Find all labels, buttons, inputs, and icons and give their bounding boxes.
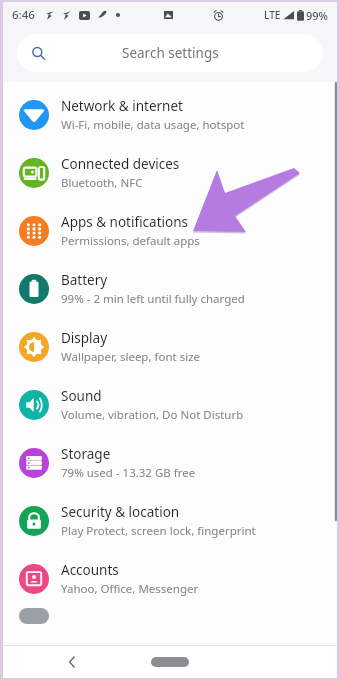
staticText: Security & location — [61, 503, 180, 521]
staticText: Volume, vibration, Do Not Disturb — [61, 407, 244, 423]
staticText: Sound — [61, 387, 102, 405]
staticText: Connected devices — [61, 155, 180, 173]
button[interactable]: Security & location — [3, 492, 337, 550]
button[interactable]: Back — [61, 651, 83, 673]
staticText: Battery — [61, 271, 108, 289]
button[interactable]: Sound — [3, 376, 337, 434]
button[interactable]: Storage — [3, 434, 337, 492]
button[interactable]: Apps & notifications — [3, 202, 337, 260]
staticText: Search settings — [122, 44, 219, 62]
staticText: Accounts — [61, 561, 119, 579]
staticText: Wi-Fi, mobile, data usage, hotspot — [61, 117, 245, 133]
button[interactable]: Home — [151, 657, 189, 667]
button[interactable] — [3, 608, 337, 624]
staticText: Play Protect, screen lock, fingerprint — [61, 523, 256, 539]
staticText: Storage — [61, 445, 111, 463]
staticText: Network & internet — [61, 97, 183, 115]
button[interactable]: Search settings — [17, 34, 323, 72]
staticText: Apps & notifications — [61, 213, 188, 231]
staticText: Display — [61, 329, 108, 347]
button[interactable]: Network & internet — [3, 86, 337, 144]
button[interactable]: Connected devices — [3, 144, 337, 202]
button[interactable]: Display — [3, 318, 337, 376]
staticText: 99% - 2 min left until fully charged — [61, 291, 245, 307]
staticText: 6:46 — [12, 7, 35, 23]
staticText: Bluetooth, NFC — [61, 175, 143, 191]
staticText: 79% used - 13.32 GB free — [61, 465, 196, 481]
staticText: Yahoo, Office, Messenger — [61, 581, 199, 597]
staticText: Wallpaper, sleep, font size — [61, 349, 201, 365]
staticText: LTE — [264, 8, 281, 22]
staticText: Permissions, default apps — [61, 233, 200, 249]
button[interactable]: Battery — [3, 260, 337, 318]
staticText: 99% — [306, 8, 328, 23]
button[interactable]: Accounts — [3, 550, 337, 608]
